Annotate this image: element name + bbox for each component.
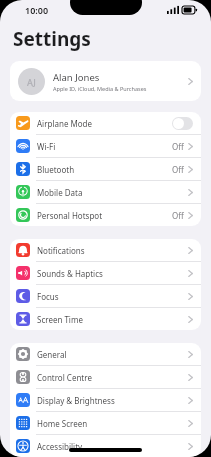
staticText: Personal Hotspot [37,210,172,221]
staticText: Sounds & Haptics [37,268,188,279]
staticText: General [37,349,188,360]
button[interactable]: Screen Time [10,308,201,330]
staticText: Home Screen [37,418,188,429]
staticText: Settings [13,26,91,52]
button[interactable]: Accessibility [10,435,201,457]
staticText: Alan Jones [53,71,100,84]
button[interactable]: Bluetooth [10,158,201,181]
staticText: Bluetooth [37,164,172,175]
button[interactable]: Wi-Fi [10,135,201,158]
staticText: Control Centre [37,372,188,383]
staticText: Focus [37,291,188,302]
button[interactable]: AJ [10,61,201,101]
staticText: Off [172,164,184,175]
staticText: Airplane Mode [37,118,172,129]
button[interactable]: Sounds & Haptics [10,262,201,285]
button[interactable]: Focus [10,285,201,308]
button[interactable]: Notifications [10,239,201,262]
staticText: Mobile Data [37,187,188,198]
other: Airplane Mode toggle [172,117,193,130]
staticText: Notifications [37,245,188,256]
button[interactable]: Personal Hotspot [10,204,201,226]
button[interactable]: Mobile Data [10,181,201,204]
staticText: Screen Time [37,314,188,325]
button[interactable]: General [10,343,201,366]
staticText: Accessibility [37,441,188,452]
button[interactable]: Display & Brightness [10,389,201,412]
staticText: Off [172,210,184,221]
staticText: Off [172,141,184,152]
staticText: Apple ID, iCloud, Media & Purchases [53,85,147,92]
button[interactable]: Airplane Mode [10,112,201,135]
staticText: 10:00 [25,4,49,16]
staticText: Wi-Fi [37,141,172,152]
button[interactable]: Control Centre [10,366,201,389]
button[interactable]: Home Screen [10,412,201,435]
staticText: AJ [27,76,36,88]
staticText: Display & Brightness [37,395,188,406]
